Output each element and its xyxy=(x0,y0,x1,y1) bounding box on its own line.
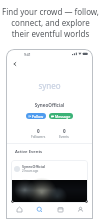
staticText: Active Events xyxy=(15,149,43,155)
staticText: Followers xyxy=(31,135,46,139)
button[interactable]: Back xyxy=(9,58,20,69)
button[interactable]: Message xyxy=(49,113,73,119)
button[interactable]: Explore xyxy=(31,204,47,217)
staticText: syneo xyxy=(6,80,93,91)
staticText: 0 xyxy=(37,128,40,134)
button[interactable]: Profile xyxy=(72,204,88,217)
button[interactable]: 0 xyxy=(29,128,48,139)
button[interactable]: Events xyxy=(52,204,68,217)
button[interactable]: 0 xyxy=(57,128,71,139)
staticText: 0 xyxy=(63,128,66,134)
button[interactable]: Home xyxy=(11,204,27,217)
staticText: Events xyxy=(59,135,69,139)
staticText: SyneoOfficial xyxy=(6,102,93,108)
staticText: Message xyxy=(55,114,71,119)
staticText: SyneoOfficial xyxy=(22,164,46,169)
staticText: Follow xyxy=(32,114,44,119)
staticText: 9:41 xyxy=(24,52,31,57)
button[interactable]: SyneoOfficial xyxy=(11,160,88,203)
staticText: Find your crowd — follow, connect, and e… xyxy=(0,6,101,39)
button[interactable]: Follow xyxy=(26,113,46,119)
staticText: 2 hours ago xyxy=(22,169,39,173)
